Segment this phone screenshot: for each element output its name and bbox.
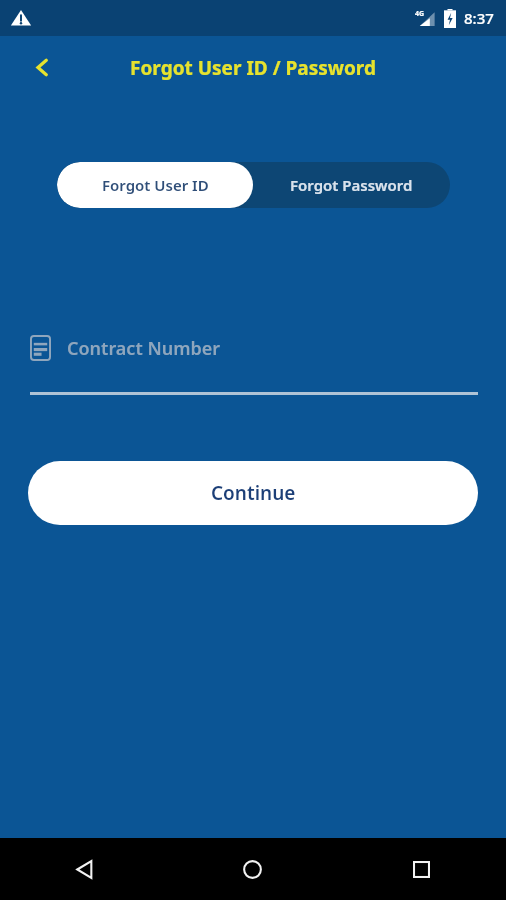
staticText: Continue <box>211 480 296 506</box>
button[interactable]: Continue <box>28 461 478 525</box>
button[interactable]: Forgot User ID <box>57 162 253 208</box>
staticText: 8:37 <box>464 8 494 28</box>
staticText: Forgot Password <box>290 175 413 195</box>
staticText: Forgot User ID <box>102 175 209 195</box>
button[interactable]: Contract Number <box>30 328 478 368</box>
button[interactable]: Forgot Password <box>253 162 450 208</box>
staticText: Contract Number <box>67 336 221 361</box>
button[interactable]: Home <box>168 838 337 900</box>
staticText: 4G <box>415 9 425 19</box>
button[interactable]: Back <box>0 838 168 900</box>
staticText: Forgot User ID / Password <box>130 55 376 81</box>
button[interactable]: Recent apps <box>337 838 506 900</box>
button[interactable]: Back <box>18 43 66 91</box>
